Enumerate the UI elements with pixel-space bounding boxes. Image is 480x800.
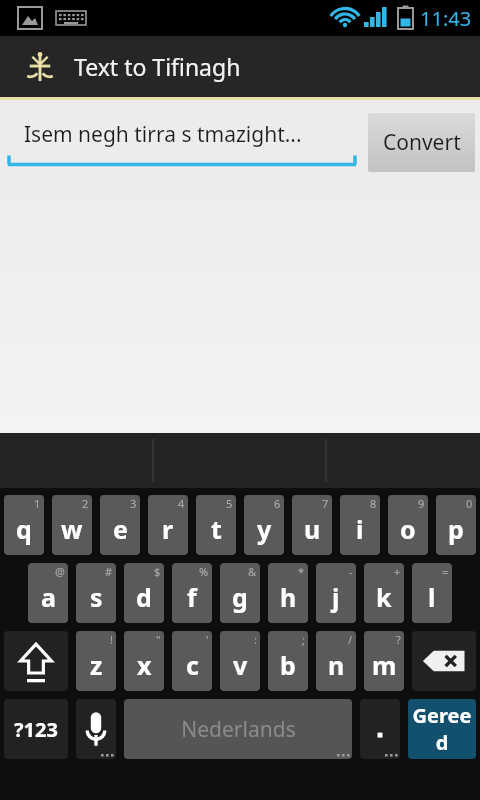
button[interactable]: :: [220, 631, 260, 691]
button[interactable]: !: [76, 631, 116, 691]
staticText: p: [448, 512, 464, 546]
staticText: a: [41, 580, 56, 614]
button[interactable]: /: [316, 631, 356, 691]
staticText: ': [206, 632, 209, 647]
staticText: 6: [274, 496, 281, 511]
button[interactable]: 9: [388, 495, 428, 555]
staticText: v: [233, 648, 248, 682]
staticText: $: [154, 564, 161, 579]
staticText: h: [280, 580, 297, 614]
staticText: 4: [178, 496, 185, 511]
staticText: j: [332, 580, 340, 614]
button[interactable]: Voice input: [76, 699, 116, 759]
button[interactable]: Backspace: [412, 631, 476, 691]
staticText: Nederlands: [181, 715, 296, 744]
other: Tifinagh logo: [24, 51, 56, 83]
staticText: y: [257, 512, 272, 546]
staticText: g: [232, 580, 248, 614]
staticText: z: [90, 648, 103, 682]
staticText: 9: [418, 496, 425, 511]
button[interactable]: 1: [4, 495, 44, 555]
button[interactable]: #: [76, 563, 116, 623]
staticText: 1: [34, 496, 41, 511]
button[interactable]: ": [124, 631, 164, 691]
staticText: @: [55, 564, 65, 579]
staticText: +: [394, 564, 401, 579]
button[interactable]: @: [28, 563, 68, 623]
button[interactable]: 5: [196, 495, 236, 555]
staticText: ?: [396, 632, 401, 647]
staticText: t: [211, 512, 222, 546]
staticText: e: [113, 512, 128, 546]
staticText: i: [356, 512, 364, 546]
staticText: o: [400, 512, 416, 546]
button[interactable]: &: [220, 563, 260, 623]
staticText: 2: [82, 496, 89, 511]
staticText: -: [349, 564, 353, 579]
staticText: b: [280, 648, 296, 682]
staticText: %: [199, 564, 209, 579]
staticText: Convert: [383, 128, 461, 157]
button[interactable]: Convert: [368, 113, 475, 172]
staticText: Text to Tifinagh: [74, 51, 241, 82]
staticText: d: [136, 580, 152, 614]
button[interactable]: *: [268, 563, 308, 623]
staticText: 8: [370, 496, 377, 511]
staticText: 5: [226, 496, 233, 511]
staticText: 3: [130, 496, 137, 511]
staticText: :: [254, 632, 257, 647]
staticText: !: [110, 632, 113, 647]
staticText: ;: [302, 632, 305, 647]
button[interactable]: =: [412, 563, 452, 623]
button[interactable]: Period: [360, 699, 400, 759]
staticText: *: [298, 564, 305, 579]
staticText: k: [376, 580, 392, 614]
staticText: l: [428, 580, 436, 614]
staticText: /: [348, 632, 353, 647]
button[interactable]: Shift: [4, 631, 68, 691]
button[interactable]: %: [172, 563, 212, 623]
staticText: Isem negh tirra s tmazight...: [24, 120, 302, 149]
button[interactable]: -: [316, 563, 356, 623]
button[interactable]: 6: [244, 495, 284, 555]
staticText: m: [372, 648, 397, 682]
button[interactable]: 2: [52, 495, 92, 555]
staticText: #: [105, 564, 113, 579]
button[interactable]: +: [364, 563, 404, 623]
button[interactable]: 7: [292, 495, 332, 555]
button[interactable]: 3: [100, 495, 140, 555]
button[interactable]: $: [124, 563, 164, 623]
staticText: s: [90, 580, 103, 614]
button[interactable]: Done: [408, 699, 476, 759]
staticText: 0: [466, 496, 473, 511]
staticText: w: [61, 512, 83, 546]
staticText: ?123: [14, 716, 58, 743]
staticText: x: [137, 648, 152, 682]
button[interactable]: ;: [268, 631, 308, 691]
staticText: n: [328, 648, 345, 682]
staticText: ": [156, 632, 161, 647]
staticText: Gereed: [408, 702, 476, 756]
staticText: =: [442, 564, 449, 579]
button[interactable]: ': [172, 631, 212, 691]
staticText: f: [187, 580, 197, 614]
button[interactable]: 0: [436, 495, 476, 555]
button[interactable]: 8: [340, 495, 380, 555]
staticText: 7: [322, 496, 329, 511]
button[interactable]: ?: [364, 631, 404, 691]
button[interactable]: Isem negh tirra s tmazight...: [6, 110, 358, 168]
staticText: c: [186, 648, 199, 682]
staticText: 11:43: [420, 5, 472, 32]
staticText: u: [304, 512, 321, 546]
button[interactable]: Symbols: [4, 699, 68, 759]
button[interactable]: 4: [148, 495, 188, 555]
staticText: &: [248, 564, 257, 579]
button[interactable]: Space: [124, 699, 352, 759]
staticText: q: [16, 512, 32, 546]
staticText: r: [162, 512, 174, 546]
